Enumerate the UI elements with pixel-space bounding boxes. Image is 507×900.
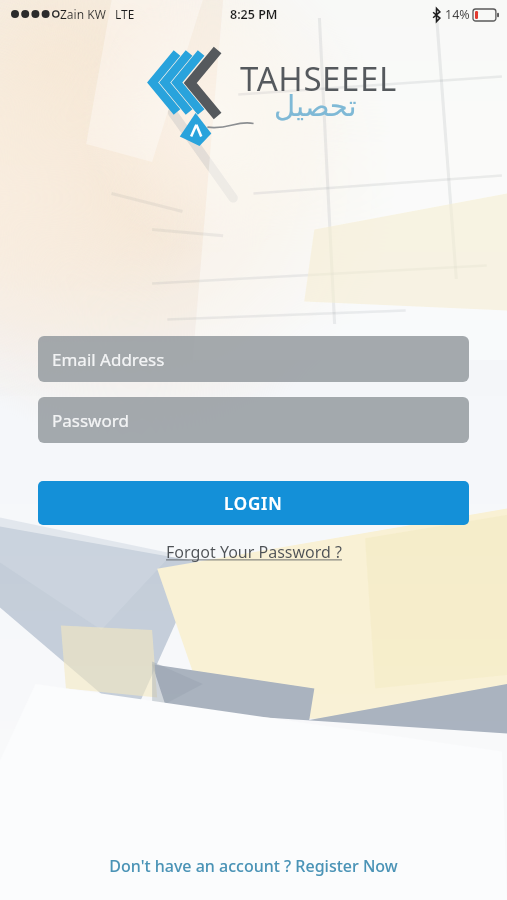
staticText: 8:25 PM — [230, 6, 278, 23]
staticText: LOGIN — [224, 492, 283, 515]
staticText: LTE — [115, 6, 135, 22]
button[interactable]: Email Address — [38, 336, 469, 382]
button[interactable]: Don't have an account ? Register Now — [99, 850, 408, 882]
staticText: 14% — [445, 6, 470, 23]
button[interactable]: LOGIN — [38, 481, 469, 525]
staticText: TAHSEEEL — [240, 56, 397, 101]
button[interactable]: Forgot Your Password ? — [160, 538, 348, 566]
button[interactable]: Password — [38, 397, 469, 443]
staticText: Email Address — [52, 348, 165, 371]
staticText: Password — [52, 409, 129, 432]
staticText: تحصيل — [274, 89, 357, 123]
staticText: Zain KW — [60, 6, 106, 22]
